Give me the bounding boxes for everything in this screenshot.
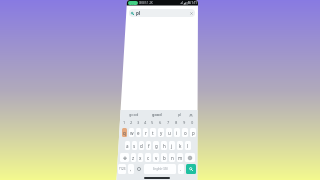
- button[interactable]: .: [178, 164, 184, 174]
- button[interactable]: p: [190, 128, 196, 137]
- button[interactable]: [185, 153, 195, 162]
- button[interactable]: [120, 153, 129, 162]
- staticText: good: [129, 112, 139, 117]
- staticText: 1: [123, 120, 126, 125]
- button[interactable]: k: [177, 141, 183, 150]
- button[interactable]: ?123: [118, 164, 126, 174]
- button[interactable]: t: [150, 128, 156, 137]
- staticText: 6: [159, 120, 162, 125]
- staticText: z: [132, 155, 135, 161]
- staticText: y: [160, 130, 163, 136]
- button[interactable]: 8: [172, 119, 180, 126]
- button[interactable]: u: [166, 128, 172, 137]
- staticText: i: [176, 130, 178, 136]
- button[interactable]: d: [139, 141, 144, 150]
- staticText: c: [147, 155, 150, 161]
- button[interactable]: e: [136, 128, 141, 137]
- button[interactable]: pl: [168, 111, 191, 118]
- button[interactable]: ,: [128, 164, 134, 174]
- staticText: r: [145, 130, 147, 136]
- staticText: a: [126, 143, 129, 149]
- button[interactable]: 2: [128, 119, 135, 126]
- button[interactable]: j: [169, 141, 175, 150]
- staticText: 5: [151, 120, 154, 125]
- staticText: e: [137, 130, 140, 136]
- staticText: 0: [191, 120, 194, 125]
- button[interactable]: w: [129, 128, 134, 137]
- button[interactable]: good: [123, 111, 145, 118]
- staticText: ..ıl ◢ ▯56 1:11: [180, 1, 197, 5]
- staticText: ,: [130, 166, 132, 172]
- staticText: d: [140, 143, 143, 149]
- button[interactable]: g: [153, 141, 159, 150]
- staticText: .: [180, 166, 182, 172]
- button[interactable]: y: [158, 128, 164, 137]
- staticText: k: [179, 143, 182, 149]
- staticText: x: [139, 155, 142, 161]
- button[interactable]: c: [145, 153, 151, 162]
- staticText: p: [192, 130, 195, 136]
- staticText: 1:1: [131, 2, 135, 5]
- button[interactable]: [136, 164, 142, 174]
- button[interactable]: b: [161, 153, 167, 162]
- button[interactable]: 6: [156, 119, 164, 126]
- staticText: 0KB/S 1.2K: [139, 1, 153, 5]
- staticText: 3: [137, 120, 140, 125]
- staticText: j: [171, 143, 173, 149]
- button[interactable]: s: [132, 141, 137, 150]
- button[interactable]: 1: [121, 119, 128, 126]
- button[interactable]: 0: [188, 119, 196, 126]
- staticText: 4: [144, 120, 147, 125]
- button[interactable]: good: [145, 111, 168, 118]
- staticText: g: [155, 143, 158, 149]
- button[interactable]: o: [182, 128, 188, 137]
- staticText: pl: [178, 112, 182, 117]
- button[interactable]: pl: [129, 9, 195, 17]
- staticText: u: [168, 130, 171, 136]
- staticText: ?123: [119, 167, 126, 171]
- button[interactable]: z: [131, 153, 136, 162]
- button[interactable]: n: [169, 153, 175, 162]
- button[interactable]: 7: [164, 119, 172, 126]
- button[interactable]: [188, 112, 193, 117]
- staticText: 2: [130, 120, 133, 125]
- staticText: 7: [167, 120, 170, 125]
- staticText: h: [163, 143, 166, 149]
- button[interactable]: i: [174, 128, 180, 137]
- button[interactable]: h: [161, 141, 167, 150]
- staticText: English (US): [153, 167, 168, 171]
- staticText: w: [130, 130, 134, 136]
- staticText: l: [187, 143, 189, 149]
- staticText: o: [184, 130, 187, 136]
- button[interactable]: 5: [149, 119, 156, 126]
- staticText: 8: [175, 120, 178, 125]
- button[interactable]: v: [153, 153, 159, 162]
- button[interactable]: 3: [135, 119, 142, 126]
- staticText: 9: [183, 120, 186, 125]
- button[interactable]: 9: [180, 119, 188, 126]
- staticText: b: [163, 155, 166, 161]
- button[interactable]: q: [122, 128, 127, 137]
- staticText: f: [148, 143, 150, 149]
- staticText: m: [178, 155, 183, 161]
- button[interactable]: 4: [142, 119, 149, 126]
- button[interactable]: f: [146, 141, 151, 150]
- staticText: s: [133, 143, 136, 149]
- staticText: n: [171, 155, 174, 161]
- staticText: good: [152, 112, 162, 117]
- button[interactable]: English (US): [144, 164, 176, 174]
- button[interactable]: a: [125, 141, 130, 150]
- button[interactable]: [186, 164, 196, 174]
- staticText: pl: [136, 10, 141, 16]
- staticText: q: [123, 130, 126, 136]
- staticText: t: [152, 130, 154, 136]
- button[interactable]: x: [138, 153, 143, 162]
- button[interactable]: l: [185, 141, 191, 150]
- button[interactable]: m: [177, 153, 183, 162]
- staticText: v: [155, 155, 158, 161]
- button[interactable]: r: [143, 128, 148, 137]
